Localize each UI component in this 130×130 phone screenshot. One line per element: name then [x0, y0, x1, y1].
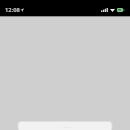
other: Cellular signal — [101, 8, 108, 12]
other: Location in use — [20, 8, 24, 12]
other: Wi-Fi connected — [110, 8, 115, 12]
other: Battery — [117, 8, 124, 12]
staticText: 12:08 — [5, 6, 20, 14]
button[interactable]: Expand bottom sheet — [17, 120, 113, 130]
